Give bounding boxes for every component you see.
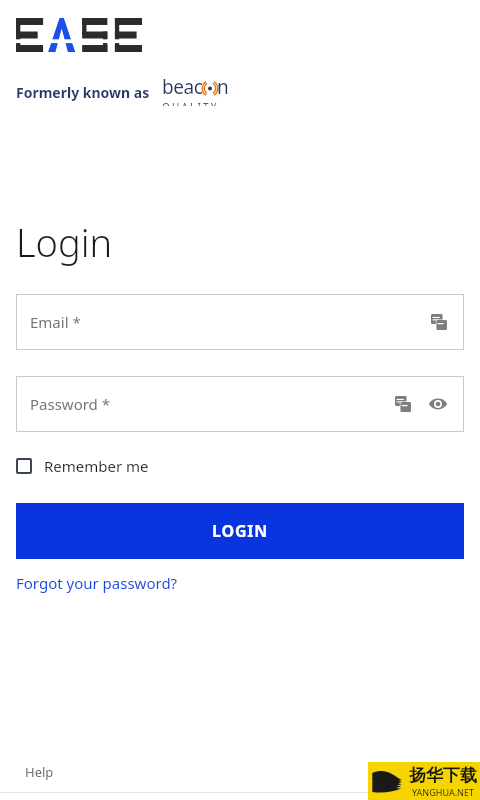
staticText: n (217, 74, 229, 100)
staticText: beac (162, 74, 203, 100)
staticText: Password * (30, 394, 111, 414)
staticText: QUALITY (162, 100, 219, 106)
button[interactable]: LOGIN (16, 503, 464, 559)
staticText: 扬华下载 (409, 765, 477, 786)
button[interactable]: Saved credentials (392, 393, 414, 415)
staticText: Forgot your password? (16, 573, 178, 593)
staticText: Login (16, 216, 113, 268)
staticText: Remember me (44, 456, 149, 476)
button[interactable]: Show password (426, 392, 450, 416)
staticText: Terms of use (376, 763, 455, 781)
staticText: LOGIN (212, 520, 269, 542)
staticText: Email * (30, 312, 81, 332)
button[interactable]: Remember me (16, 454, 149, 478)
button[interactable]: Help (25, 763, 54, 781)
staticText: Help (25, 763, 54, 781)
button[interactable]: Email * (16, 294, 464, 350)
staticText: Formerly known as (16, 83, 150, 102)
button[interactable]: Saved credentials (428, 311, 450, 333)
button[interactable]: Terms of use (376, 763, 455, 781)
button[interactable]: Password * (16, 376, 464, 432)
button[interactable]: Forgot your password? (16, 573, 178, 593)
staticText: YANGHUA.NET (412, 786, 474, 798)
